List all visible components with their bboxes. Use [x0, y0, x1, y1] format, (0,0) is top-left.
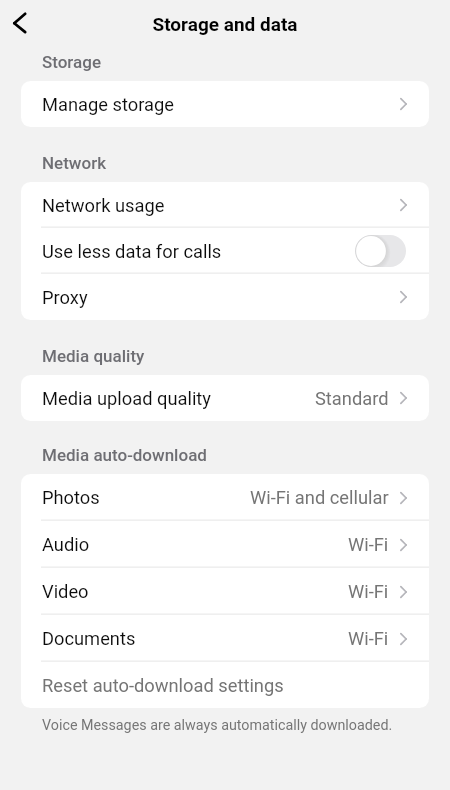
- staticText: Documents: [42, 628, 136, 649]
- button[interactable]: Video: [21, 568, 429, 615]
- button[interactable]: Photos: [21, 474, 429, 521]
- button[interactable]: Media upload quality: [21, 375, 429, 421]
- staticText: Audio: [42, 534, 90, 555]
- staticText: Media upload quality: [42, 388, 211, 409]
- button[interactable]: Proxy: [21, 274, 429, 320]
- staticText: Storage: [42, 52, 102, 72]
- button[interactable]: Back: [0, 0, 42, 47]
- button[interactable]: Documents: [21, 615, 429, 662]
- staticText: Media quality: [42, 346, 145, 366]
- staticText: Use less data for calls: [42, 241, 222, 262]
- button[interactable]: Reset auto-download settings: [21, 662, 429, 708]
- staticText: Storage and data: [152, 13, 298, 35]
- button[interactable]: Audio: [21, 521, 429, 568]
- staticText: Manage storage: [42, 94, 174, 115]
- staticText: Video: [42, 581, 89, 602]
- staticText: Proxy: [42, 287, 88, 308]
- staticText: Wi-Fi and cellular: [250, 487, 389, 508]
- staticText: Photos: [42, 487, 100, 508]
- staticText: Voice Messages are always automatically …: [42, 717, 393, 734]
- staticText: Media auto-download: [42, 445, 207, 465]
- staticText: Wi-Fi: [348, 628, 389, 649]
- staticText: Network usage: [42, 195, 165, 216]
- staticText: Wi-Fi: [348, 581, 389, 602]
- staticText: Standard: [315, 388, 389, 409]
- button[interactable]: Manage storage: [21, 81, 429, 127]
- button[interactable]: Use less data for calls: [21, 228, 429, 274]
- staticText: Wi-Fi: [348, 534, 389, 555]
- button[interactable]: Network usage: [21, 182, 429, 228]
- staticText: Network: [42, 153, 107, 173]
- staticText: Reset auto-download settings: [42, 675, 284, 696]
